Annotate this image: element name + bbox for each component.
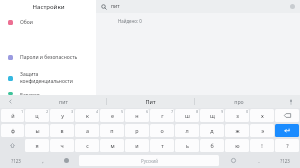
button[interactable]: г: [150, 109, 174, 122]
button[interactable]: ч: [50, 139, 74, 152]
staticText: ф: [11, 127, 15, 134]
button[interactable]: Батарея: [0, 92, 96, 95]
staticText: й: [11, 112, 15, 119]
button[interactable]: Обои: [0, 16, 96, 29]
staticText: ?123: [11, 158, 21, 164]
button[interactable]: ?: [275, 139, 299, 152]
button[interactable]: ?123: [1, 154, 30, 167]
button[interactable]: Backspace: [275, 109, 299, 122]
staticText: я: [35, 142, 39, 149]
staticText: 3: [71, 110, 73, 114]
button[interactable]: про: [195, 95, 282, 108]
staticText: г: [161, 112, 164, 119]
button[interactable]: ю: [225, 139, 249, 152]
button[interactable]: б: [200, 139, 224, 152]
staticText: о: [160, 127, 164, 134]
staticText: б: [210, 142, 214, 149]
staticText: ш: [185, 112, 190, 119]
button[interactable]: Русский: [79, 155, 219, 166]
staticText: Найдено: 0: [118, 18, 142, 24]
button[interactable]: х: [250, 109, 274, 122]
button[interactable]: ш: [175, 109, 199, 122]
button[interactable]: а: [75, 124, 99, 137]
button[interactable]: ж: [225, 124, 249, 137]
staticText: пит: [111, 3, 120, 10]
staticText: 8: [196, 110, 198, 114]
staticText: пит: [59, 98, 68, 105]
staticText: Батарея: [20, 92, 40, 95]
button[interactable]: Change language: [55, 154, 78, 167]
staticText: э: [261, 127, 264, 134]
button[interactable]: о: [150, 124, 174, 137]
button[interactable]: с: [75, 139, 99, 152]
button[interactable]: Защита: [0, 69, 96, 87]
button[interactable]: Пароли и безопасность: [0, 51, 96, 64]
staticText: ь: [186, 142, 189, 149]
staticText: 9: [221, 110, 223, 114]
staticText: м: [110, 142, 115, 149]
button[interactable]: Clear: [290, 4, 295, 9]
staticText: ч: [60, 142, 64, 149]
button[interactable]: к: [75, 109, 99, 122]
staticText: ,: [42, 157, 44, 164]
staticText: п: [110, 127, 114, 134]
staticText: з: [236, 112, 239, 119]
button[interactable]: Пит: [107, 95, 194, 108]
button[interactable]: р: [125, 124, 149, 137]
staticText: 1: [21, 110, 23, 114]
button[interactable]: Emoji: [220, 154, 246, 167]
staticText: 4: [96, 110, 98, 114]
button[interactable]: ф: [1, 124, 24, 137]
button[interactable]: н: [125, 109, 149, 122]
button[interactable]: и: [125, 139, 149, 152]
button[interactable]: Shift: [1, 139, 24, 152]
button[interactable]: Previous: [0, 95, 20, 108]
staticText: д: [210, 127, 214, 134]
button[interactable]: л: [175, 124, 199, 137]
staticText: Обои: [20, 19, 33, 26]
button[interactable]: ц: [25, 109, 49, 122]
button[interactable]: э: [250, 124, 274, 137]
button[interactable]: ?123: [271, 154, 299, 167]
staticText: е: [111, 112, 114, 119]
button[interactable]: з: [225, 109, 249, 122]
staticText: Пароли и безопасность: [20, 54, 78, 61]
staticText: а: [86, 127, 89, 134]
button[interactable]: у: [50, 109, 74, 122]
button[interactable]: Enter: [275, 124, 299, 137]
button[interactable]: ы: [25, 124, 49, 137]
button[interactable]: м: [100, 139, 124, 152]
button[interactable]: Voice input: [282, 95, 300, 108]
button[interactable]: я: [25, 139, 49, 152]
button[interactable]: в: [50, 124, 74, 137]
staticText: 6: [146, 110, 148, 114]
button[interactable]: !: [250, 139, 274, 152]
staticText: ю: [235, 142, 240, 149]
staticText: к: [86, 112, 89, 119]
button[interactable]: т: [150, 139, 174, 152]
staticText: 0: [246, 110, 248, 114]
staticText: р: [135, 127, 139, 134]
staticText: Пит: [145, 98, 156, 105]
button[interactable]: п: [100, 124, 124, 137]
staticText: л: [185, 127, 189, 134]
staticText: 2: [46, 110, 48, 114]
button[interactable]: Search: [96, 0, 300, 13]
button[interactable]: пит: [20, 95, 106, 108]
staticText: Защита: [20, 71, 39, 78]
staticText: Настройки: [32, 3, 65, 11]
button[interactable]: щ: [200, 109, 224, 122]
button[interactable]: Найдено: 0: [118, 17, 142, 25]
other: Search: [101, 4, 107, 10]
staticText: щ: [210, 112, 215, 119]
staticText: с: [86, 142, 89, 149]
button[interactable]: е: [100, 109, 124, 122]
button[interactable]: ь: [175, 139, 199, 152]
button[interactable]: й: [1, 109, 24, 122]
staticText: ?: [286, 142, 289, 149]
staticText: ж: [235, 127, 240, 134]
button[interactable]: д: [200, 124, 224, 137]
staticText: про: [234, 98, 244, 105]
